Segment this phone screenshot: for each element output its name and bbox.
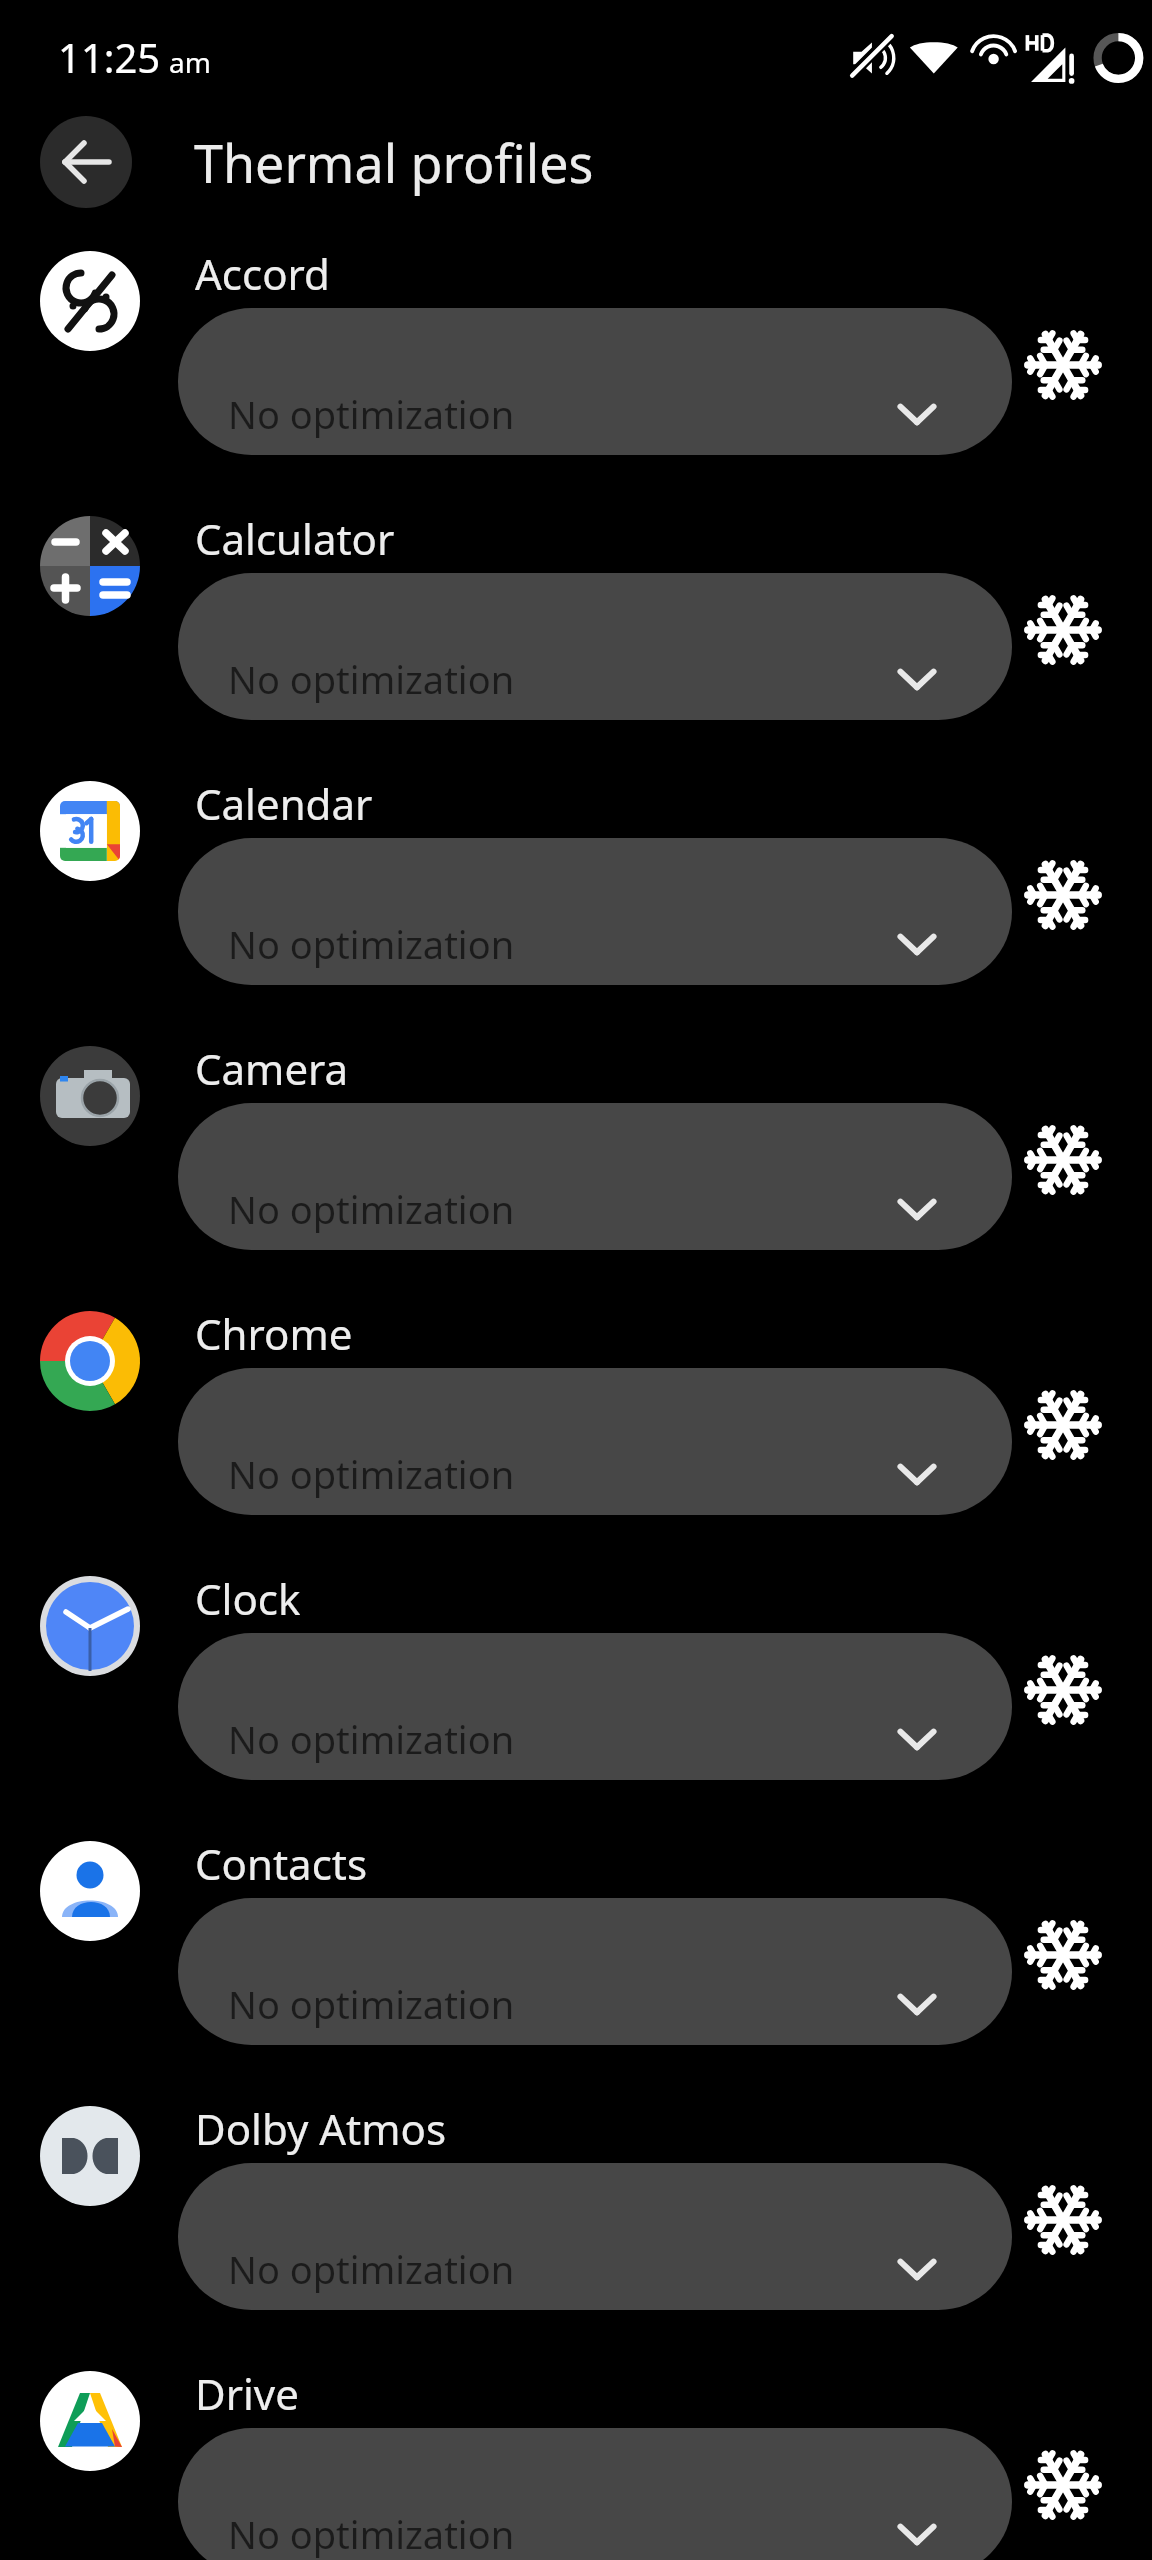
staticText: Calculator [195,510,395,567]
button[interactable]: No optimization [178,308,1012,455]
staticText: No optimization [228,388,515,440]
button[interactable]: Chrome icon [40,1311,140,1411]
staticText: Calendar [195,775,373,832]
button[interactable]: Thermal indicator [1019,1116,1107,1204]
button[interactable]: Thermal indicator [1019,1911,1107,1999]
button[interactable]: No optimization [178,2163,1012,2310]
button[interactable]: Back [40,116,132,208]
button[interactable]: No optimization [178,2428,1012,2560]
button[interactable]: No optimization [178,1103,1012,1250]
staticText: No optimization [228,2243,515,2295]
staticText: No optimization [228,2508,515,2560]
button[interactable]: Thermal indicator [1019,1646,1107,1734]
staticText: No optimization [228,1448,515,1500]
button[interactable]: Accord icon [40,251,140,351]
staticText: No optimization [228,1978,515,2030]
staticText: Accord [195,245,330,302]
button[interactable]: Thermal indicator [1019,586,1107,674]
button[interactable]: Clock icon [40,1576,140,1676]
staticText: Dolby Atmos [195,2100,447,2157]
button[interactable]: Thermal indicator [1019,851,1107,939]
button[interactable]: No optimization [178,838,1012,985]
staticText: Camera [195,1040,349,1097]
staticText: No optimization [228,1713,515,1765]
button[interactable]: No optimization [178,1898,1012,2045]
button[interactable]: Calendar icon [40,781,140,881]
button[interactable]: Thermal indicator [1019,2441,1107,2529]
staticText: Clock [195,1570,301,1627]
button[interactable]: Calculator icon [40,516,140,616]
staticText: Drive [195,2365,299,2422]
staticText: No optimization [228,1183,515,1235]
staticText: 11:25 [58,30,161,84]
staticText: No optimization [228,918,515,970]
button[interactable]: No optimization [178,573,1012,720]
button[interactable]: No optimization [178,1633,1012,1780]
button[interactable]: Contacts icon [40,1841,140,1941]
button[interactable]: Thermal indicator [1019,321,1107,409]
button[interactable]: Dolby Atmos icon [40,2106,140,2206]
staticText: Thermal profiles [194,127,594,198]
staticText: Contacts [195,1835,368,1892]
button[interactable]: No optimization [178,1368,1012,1515]
button[interactable]: Thermal indicator [1019,1381,1107,1469]
staticText: Chrome [195,1305,353,1362]
button[interactable]: Drive icon [40,2371,140,2471]
staticText: am [169,43,211,81]
button[interactable]: Camera icon [40,1046,140,1146]
staticText: No optimization [228,653,515,705]
button[interactable]: Thermal indicator [1019,2176,1107,2264]
